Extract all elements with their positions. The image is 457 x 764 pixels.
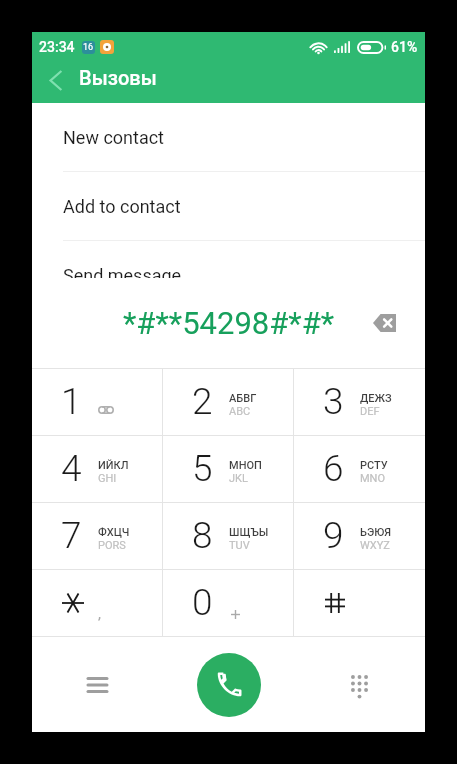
button[interactable]: 9 (294, 503, 425, 569)
staticText: GHI (98, 472, 117, 485)
staticText: Add to contact (63, 196, 181, 217)
button[interactable]: Call (197, 653, 261, 717)
button[interactable]: 0 (163, 570, 294, 636)
staticText: 6 (323, 447, 344, 490)
button[interactable]: 5 (163, 436, 294, 502)
staticText: TUV (229, 539, 250, 552)
button[interactable]: New contact (32, 103, 425, 171)
button[interactable]: 4 (32, 436, 163, 502)
button[interactable] (294, 570, 425, 636)
staticText: New contact (63, 127, 164, 148)
staticText: 61% (391, 39, 418, 55)
staticText: ИЙКЛ (98, 459, 129, 472)
staticText: Вызовы (79, 66, 157, 89)
staticText: MNO (360, 472, 386, 485)
staticText: JKL (229, 472, 248, 485)
button[interactable]: 6 (294, 436, 425, 502)
button[interactable]: Call log (32, 637, 163, 732)
staticText: WXYZ (360, 539, 390, 552)
staticText: АБВГ (229, 392, 257, 405)
button[interactable]: Back (32, 58, 79, 103)
staticText: 5 (192, 447, 213, 490)
button[interactable]: Send message (32, 241, 425, 278)
staticText: 2 (192, 380, 213, 423)
button[interactable]: Dialpad (294, 637, 425, 732)
staticText: ШЩЪЫ (229, 526, 269, 539)
staticText: 8 (192, 514, 213, 557)
staticText: , (98, 605, 101, 623)
staticText: DEF (360, 405, 380, 418)
button[interactable]: 7 (32, 503, 163, 569)
staticText: МНОП (229, 459, 262, 472)
staticText: 3 (323, 380, 344, 423)
staticText: *#**54298#*#* (123, 305, 335, 341)
staticText: Send message (63, 265, 182, 278)
button[interactable]: 1 (32, 369, 163, 435)
staticText: 23:34 (39, 39, 75, 55)
staticText: 0 (192, 581, 213, 624)
staticText: РСТУ (360, 459, 388, 472)
staticText: 1 (61, 380, 82, 423)
staticText: ЬЭЮЯ (360, 526, 392, 539)
staticText: ДЕЖЗ (360, 392, 392, 405)
staticText: ABC (229, 405, 251, 418)
staticText: 9 (323, 514, 344, 557)
staticText: 4 (61, 447, 82, 490)
staticText: PORS (98, 539, 126, 552)
button[interactable]: Add to contact (32, 172, 425, 240)
button[interactable]: 8 (163, 503, 294, 569)
staticText: 16 (83, 42, 94, 53)
button[interactable]: 3 (294, 369, 425, 435)
staticText: ФХЦЧ (98, 526, 130, 539)
button[interactable]: , (32, 570, 163, 636)
staticText: 7 (61, 514, 82, 557)
button[interactable]: Backspace (366, 305, 402, 341)
button[interactable]: 2 (163, 369, 294, 435)
